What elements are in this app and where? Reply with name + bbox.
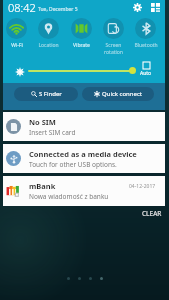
staticText: S Finder	[39, 90, 62, 98]
staticText: Nowa wiadomość z banku	[29, 192, 109, 201]
staticText: Insert SIM card	[29, 128, 76, 137]
staticText: mBank	[29, 181, 56, 191]
button[interactable]: Auto brightness	[140, 62, 152, 77]
button[interactable]: CLEAR	[139, 207, 165, 220]
staticText: Auto	[140, 70, 152, 77]
staticText: Wi-Fi	[11, 42, 23, 49]
button[interactable]: Screen rotation	[98, 18, 129, 55]
staticText: Quick connect	[102, 90, 142, 98]
button[interactable]: Settings	[132, 2, 143, 13]
staticText: 04-12-2017	[129, 183, 156, 190]
staticText: 08:42	[8, 0, 36, 14]
staticText: Bluetooth	[134, 42, 158, 49]
button[interactable]: mBank	[3, 176, 165, 206]
button[interactable]: Wi-Fi	[1, 18, 32, 49]
staticText: Touch for other USB options.	[29, 160, 117, 169]
staticText: Vibrate	[73, 42, 90, 49]
button[interactable]: S Finder	[14, 87, 78, 101]
button[interactable]: Connected as a media device	[3, 144, 165, 173]
button[interactable]: Location	[33, 18, 64, 49]
button[interactable]: Bluetooth	[130, 18, 161, 49]
staticText: Location	[38, 42, 59, 49]
button[interactable]: Edit quick settings	[150, 2, 161, 13]
button[interactable]: No SIM	[3, 112, 165, 141]
staticText: Tue, December 5	[38, 6, 78, 13]
staticText: Connected as a media device	[29, 149, 137, 159]
button[interactable]: Vibrate	[66, 18, 97, 49]
button[interactable]: Quick connect	[82, 87, 154, 101]
staticText: Screen rotation	[104, 42, 123, 55]
staticText: No SIM	[29, 117, 56, 127]
staticText: CLEAR	[142, 209, 162, 218]
